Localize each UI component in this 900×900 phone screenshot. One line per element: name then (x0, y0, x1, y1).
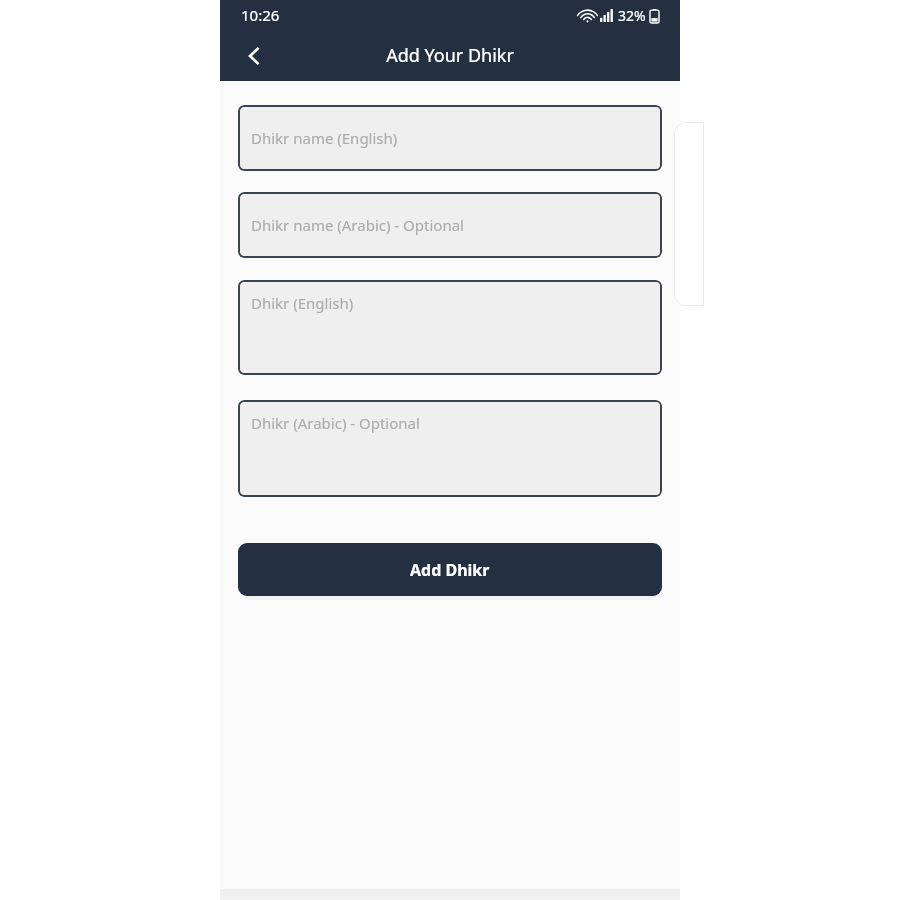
staticText: 10:26 (241, 5, 280, 25)
staticText: Add Dhikr (410, 559, 490, 581)
button[interactable]: Dhikr (English) (238, 280, 662, 375)
button[interactable]: Back (232, 34, 276, 78)
button[interactable]: Add Dhikr (238, 543, 662, 596)
staticText: Dhikr (Arabic) - Optional (251, 413, 420, 433)
staticText: Add Your Dhikr (386, 43, 514, 68)
staticText: Dhikr (English) (251, 293, 354, 313)
staticText: Dhikr name (Arabic) - Optional (251, 215, 464, 235)
staticText: 32% (618, 6, 646, 25)
button[interactable]: Dhikr name (English) (238, 105, 662, 171)
button[interactable]: Dhikr (Arabic) - Optional (238, 400, 662, 497)
button[interactable]: Dhikr name (Arabic) - Optional (238, 192, 662, 258)
staticText: Dhikr name (English) (251, 128, 398, 148)
